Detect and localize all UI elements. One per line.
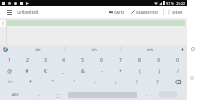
staticText: + xyxy=(119,67,122,74)
button[interactable]: + xyxy=(111,65,130,76)
button[interactable]: ) xyxy=(149,65,168,76)
staticText: 7 xyxy=(119,56,122,63)
button[interactable]: " xyxy=(41,76,63,87)
button[interactable]: mit xyxy=(122,45,177,53)
button[interactable]: , xyxy=(30,89,48,100)
button[interactable]: Google search xyxy=(1,45,9,53)
button[interactable]: 5 xyxy=(73,54,92,65)
button[interactable]: BEARBEITEN xyxy=(131,6,158,18)
button[interactable]: Navigation menu xyxy=(3,6,15,18)
button[interactable]: 3 xyxy=(36,54,54,65)
staticText: , xyxy=(38,91,40,98)
staticText: & xyxy=(81,67,85,74)
button[interactable]: ? xyxy=(147,76,168,87)
staticText: - xyxy=(101,67,103,74)
staticText: =\< xyxy=(7,79,13,84)
button[interactable]: DATEI xyxy=(109,6,124,18)
button[interactable]: die xyxy=(11,45,65,53)
staticText: 6 xyxy=(100,56,103,63)
staticText: ! xyxy=(136,78,138,85)
button[interactable]: MEHR xyxy=(167,6,183,18)
staticText: . xyxy=(146,91,148,98)
button[interactable]: 4 xyxy=(54,54,73,65)
button[interactable]: ; xyxy=(105,76,126,87)
button[interactable]: Collapse keyboard xyxy=(188,74,196,82)
button[interactable]: ( xyxy=(130,65,149,76)
staticText: 0 xyxy=(176,56,179,63)
staticText: 1 xyxy=(8,56,11,63)
staticText: # xyxy=(25,67,29,74)
staticText: ABC xyxy=(12,92,19,97)
button[interactable]: 2 xyxy=(18,54,36,65)
button[interactable]: € xyxy=(36,65,54,76)
staticText: 2 xyxy=(26,56,29,63)
staticText: € xyxy=(44,67,47,74)
button[interactable]: 7 xyxy=(111,54,130,65)
button[interactable]: 6 xyxy=(92,54,111,65)
staticText: 5 xyxy=(81,56,84,63)
staticText: 3 xyxy=(44,56,47,63)
button[interactable]: ! xyxy=(126,76,147,87)
staticText: 1 2 3 4 xyxy=(56,92,60,98)
staticText: ? xyxy=(156,78,159,85)
staticText: / xyxy=(177,67,179,74)
button[interactable]: - xyxy=(92,65,111,76)
staticText: 97 % xyxy=(166,1,174,6)
button[interactable]: Voice input xyxy=(189,45,196,52)
staticText: ( xyxy=(139,67,141,74)
staticText: 9 xyxy=(157,56,160,63)
button[interactable]: 0 xyxy=(168,54,187,65)
staticText: ) xyxy=(158,67,160,74)
staticText: die xyxy=(35,47,41,52)
button[interactable]: _ xyxy=(54,65,73,76)
button[interactable]: More suggestions xyxy=(178,45,187,53)
staticText: mit xyxy=(147,47,153,52)
staticText: _ xyxy=(62,67,65,74)
button[interactable]: : xyxy=(84,76,105,87)
button[interactable]: / xyxy=(168,65,187,76)
staticText: MEHR xyxy=(172,10,183,15)
button[interactable]: Backspace xyxy=(168,76,187,87)
staticText: " xyxy=(51,78,54,85)
staticText: @ xyxy=(7,67,12,74)
staticText: unbetitelt xyxy=(17,9,39,15)
button[interactable]: 9 xyxy=(149,54,168,65)
staticText: BEARBEITEN xyxy=(136,10,158,15)
button[interactable]: =\< xyxy=(0,76,19,87)
button[interactable]: 1 xyxy=(0,54,18,65)
button[interactable]: ich xyxy=(66,45,121,53)
button[interactable]: * xyxy=(19,76,41,87)
staticText: ; xyxy=(115,78,117,85)
staticText: * xyxy=(29,78,32,85)
button[interactable]: ABC xyxy=(0,89,30,100)
staticText: ich xyxy=(91,47,97,52)
staticText: 4 xyxy=(62,56,65,63)
button[interactable]: Emoji keyboard xyxy=(48,89,68,100)
button[interactable]: 8 xyxy=(130,54,149,65)
staticText: : xyxy=(94,78,96,85)
button[interactable]: # xyxy=(18,65,36,76)
staticText: 8 xyxy=(138,56,141,63)
button[interactable]: & xyxy=(73,65,92,76)
staticText: ' xyxy=(73,78,75,85)
staticText: 21:22 xyxy=(176,1,185,6)
staticText: 1 xyxy=(2,22,4,26)
staticText: DATEI xyxy=(114,10,124,15)
button[interactable]: @ xyxy=(0,65,18,76)
